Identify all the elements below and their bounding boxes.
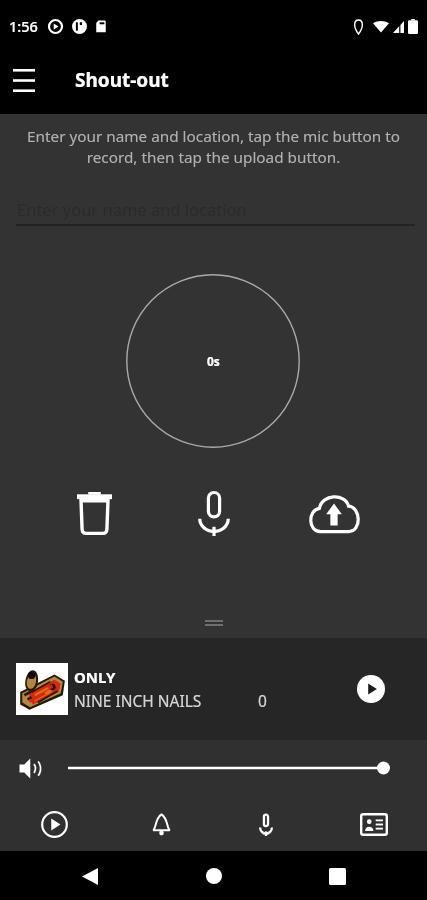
button[interactable]: Play <box>32 802 76 846</box>
button[interactable]: Upload <box>306 485 362 541</box>
staticText: Shout-out <box>75 67 169 93</box>
button[interactable]: Contacts <box>352 802 396 846</box>
staticText: 0s <box>207 353 220 369</box>
button[interactable]: Menu <box>1 57 47 103</box>
button[interactable]: Microphone <box>244 802 288 846</box>
button[interactable]: Delete recording <box>66 485 122 541</box>
button[interactable]: Record <box>186 485 242 541</box>
button[interactable]: Notifications <box>139 802 183 846</box>
staticText: 0 <box>258 690 267 711</box>
button[interactable]: ONLY <box>0 638 427 740</box>
button[interactable]: Back <box>68 854 112 898</box>
button[interactable]: Home <box>192 854 236 898</box>
staticText: NINE INCH NAILS <box>74 690 202 711</box>
staticText: ONLY <box>74 667 116 687</box>
button[interactable]: Play <box>349 667 393 711</box>
staticText: 1:56 <box>9 16 38 36</box>
button[interactable]: Recent apps <box>315 854 359 898</box>
staticText: Enter your name and location, tap the mi… <box>12 126 415 168</box>
